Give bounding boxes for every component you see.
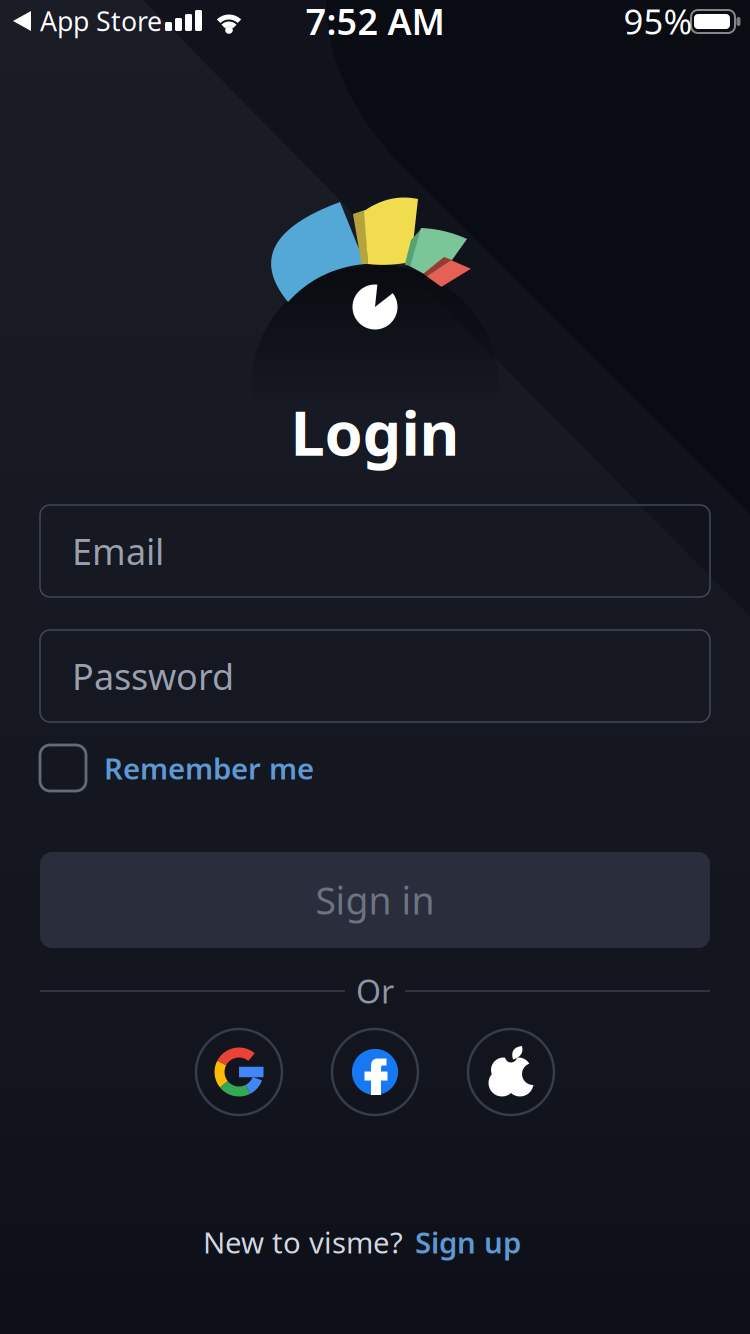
- button[interactable]: Password: [40, 630, 710, 722]
- button[interactable]: Email: [40, 505, 710, 597]
- button[interactable]: Sign in with Apple: [467, 1028, 555, 1116]
- staticText: 7:52 AM: [305, 0, 444, 45]
- staticText: Login: [290, 391, 459, 473]
- staticText: Or: [356, 970, 394, 1012]
- button[interactable]: Sign in with Google: [195, 1028, 283, 1116]
- staticText: Sign in: [315, 875, 434, 925]
- staticText: Remember me: [104, 748, 314, 787]
- staticText: App Store: [40, 3, 162, 39]
- button[interactable]: Remember me: [40, 745, 314, 791]
- staticText: Sign up: [415, 1222, 521, 1261]
- staticText: Password: [72, 652, 234, 700]
- staticText: Email: [72, 527, 164, 575]
- button[interactable]: Sign in: [40, 852, 710, 948]
- button[interactable]: Sign in with Facebook: [331, 1028, 419, 1116]
- staticText: New to visme?: [203, 1222, 403, 1261]
- staticText: 95%: [623, 0, 692, 44]
- button[interactable]: Back to App Store: [0, 0, 176, 42]
- button[interactable]: Sign up: [415, 1222, 521, 1261]
